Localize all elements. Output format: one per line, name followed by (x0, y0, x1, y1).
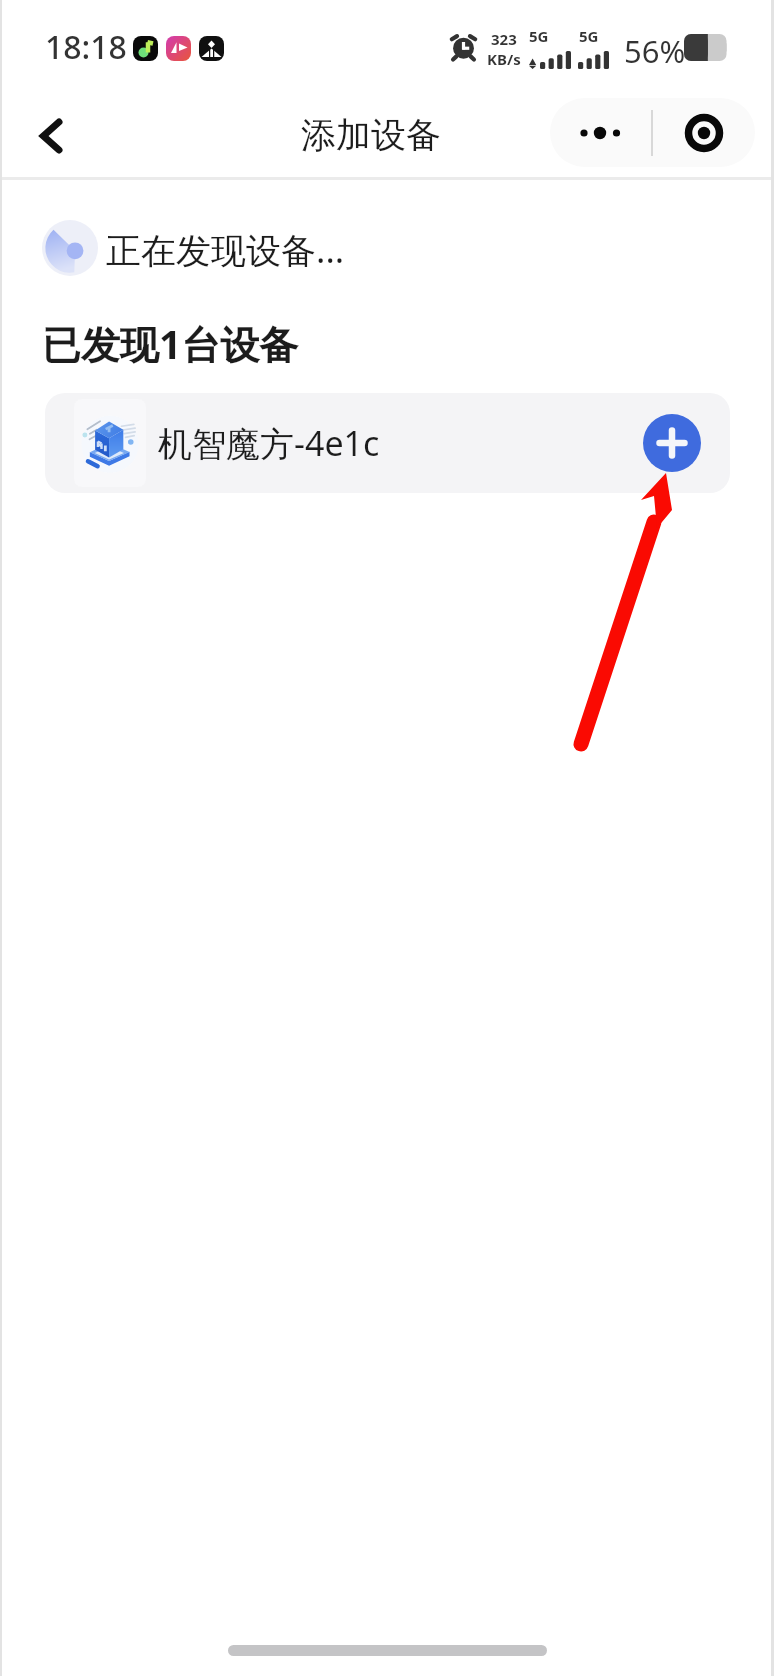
staticText: 323 (491, 29, 517, 49)
staticText: 机智魔方-4e1c (158, 420, 380, 466)
staticText: 已发现1台设备 (42, 317, 299, 370)
staticText: 5G (529, 26, 549, 46)
button[interactable]: More options (550, 98, 651, 167)
button[interactable]: Add device (643, 414, 701, 472)
button[interactable]: 机智魔方-4e1c (45, 393, 730, 493)
staticText: 56% (624, 30, 686, 72)
staticText: 添加设备 (301, 113, 441, 157)
staticText: 5G (579, 26, 599, 46)
staticText: 18:18 (45, 25, 127, 69)
button[interactable]: Close mini program (653, 98, 755, 167)
staticText: 正在发现设备... (106, 226, 345, 274)
staticText: KB/s (487, 49, 521, 69)
button[interactable]: Back (21, 103, 81, 163)
